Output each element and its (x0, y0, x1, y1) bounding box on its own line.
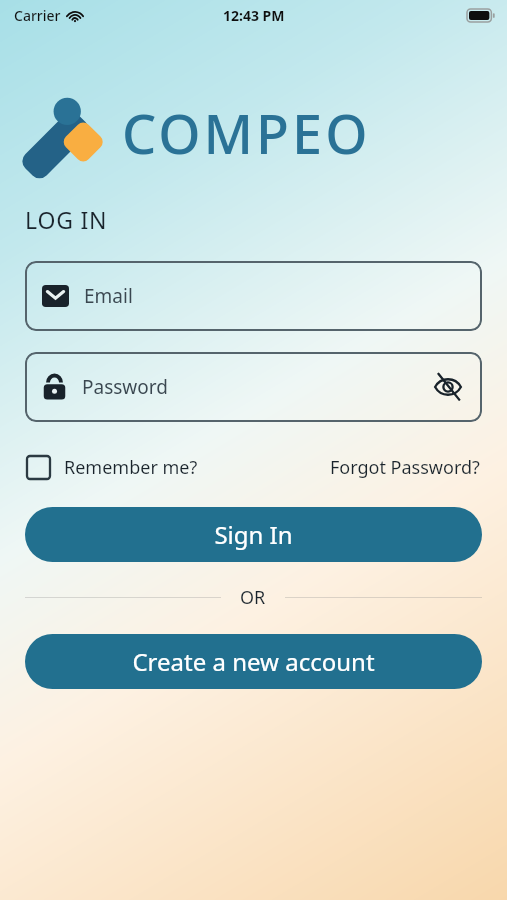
staticText: OR (240, 585, 266, 610)
staticText: COMPEO (122, 96, 371, 170)
button[interactable]: Forgot Password? (328, 448, 482, 487)
staticText: Password (82, 374, 168, 400)
staticText: Forgot Password? (330, 455, 480, 480)
button[interactable]: Password field (25, 352, 482, 422)
button[interactable]: Show password (430, 369, 466, 405)
staticText: Email (84, 283, 133, 309)
button[interactable]: Remember me? (25, 448, 200, 487)
button[interactable]: Sign In (25, 507, 482, 562)
staticText: LOG IN (25, 204, 108, 235)
staticText: Sign In (214, 518, 293, 551)
staticText: 12:43 PM (223, 6, 285, 25)
other: Compeo logo (16, 86, 110, 180)
button[interactable]: Email field (25, 261, 482, 331)
staticText: Carrier (14, 6, 61, 25)
staticText: Create a new account (132, 645, 375, 678)
button[interactable]: Create a new account (25, 634, 482, 689)
staticText: Remember me? (64, 455, 198, 480)
